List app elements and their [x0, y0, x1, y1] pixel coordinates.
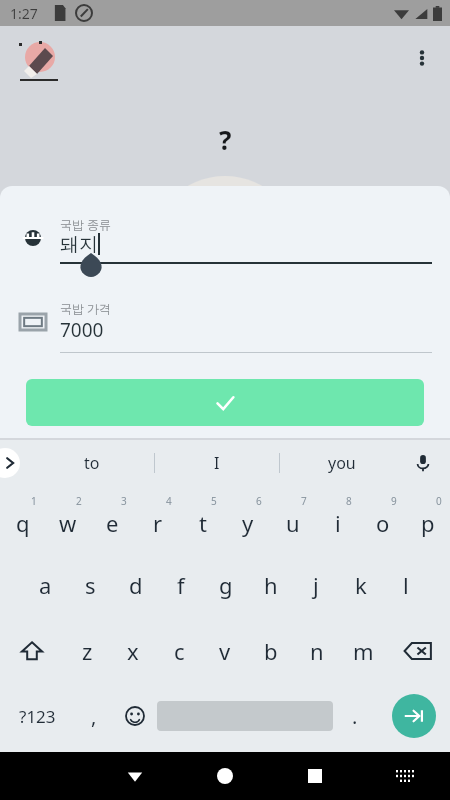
- staticText: u: [286, 508, 300, 538]
- staticText: 9: [391, 494, 397, 508]
- button[interactable]: Next: [392, 694, 436, 738]
- button[interactable]: ?123: [0, 684, 74, 748]
- button[interactable]: h: [248, 552, 293, 618]
- staticText: m: [353, 636, 374, 666]
- button[interactable]: d: [113, 552, 158, 618]
- button[interactable]: Expand toolbar: [0, 448, 20, 478]
- staticText: 국밥 가격: [60, 300, 112, 316]
- staticText: s: [85, 570, 96, 600]
- staticText: I: [214, 452, 220, 474]
- button[interactable]: t: [180, 486, 225, 552]
- button[interactable]: Keyboard indicator: [360, 752, 450, 800]
- staticText: a: [39, 570, 52, 600]
- button[interactable]: x: [110, 618, 156, 684]
- button[interactable]: v: [202, 618, 248, 684]
- staticText: 8: [346, 494, 352, 508]
- staticText: q: [16, 508, 30, 538]
- staticText: p: [421, 508, 435, 538]
- staticText: n: [310, 636, 324, 666]
- staticText: g: [219, 570, 233, 600]
- button[interactable]: Shift: [0, 618, 64, 684]
- staticText: r: [153, 508, 163, 538]
- button[interactable]: m: [340, 618, 386, 684]
- button[interactable]: More options: [402, 38, 442, 78]
- button[interactable]: o: [360, 486, 405, 552]
- button[interactable]: w: [45, 486, 90, 552]
- button[interactable]: p: [405, 486, 450, 552]
- staticText: e: [106, 508, 119, 538]
- staticText: d: [129, 570, 143, 600]
- staticText: t: [199, 508, 207, 538]
- staticText: f: [177, 570, 185, 600]
- button[interactable]: f: [158, 552, 203, 618]
- button[interactable]: i: [315, 486, 360, 552]
- button[interactable]: z: [64, 618, 110, 684]
- button[interactable]: a: [22, 552, 68, 618]
- button[interactable]: Recents: [270, 752, 360, 800]
- staticText: v: [219, 636, 231, 666]
- button[interactable]: k: [338, 552, 383, 618]
- staticText: l: [403, 570, 409, 600]
- button[interactable]: b: [248, 618, 294, 684]
- button[interactable]: you: [280, 440, 404, 486]
- button[interactable]: r: [135, 486, 180, 552]
- button[interactable]: I: [155, 440, 279, 486]
- button[interactable]: Back: [90, 752, 180, 800]
- staticText: 3: [121, 494, 127, 508]
- staticText: 7000: [60, 317, 104, 343]
- staticText: b: [264, 636, 278, 666]
- staticText: ,: [91, 703, 97, 730]
- staticText: ?123: [19, 705, 56, 728]
- button[interactable]: l: [383, 552, 428, 618]
- staticText: c: [174, 636, 185, 666]
- staticText: 국밥 종류: [60, 216, 112, 232]
- button[interactable]: Backspace: [386, 618, 450, 684]
- staticText: to: [84, 452, 100, 474]
- staticText: you: [328, 452, 356, 474]
- button[interactable]: j: [293, 552, 338, 618]
- staticText: 0: [436, 494, 442, 508]
- staticText: 1: [31, 494, 37, 508]
- staticText: h: [264, 570, 278, 600]
- staticText: o: [376, 508, 390, 538]
- button[interactable]: Home: [180, 752, 270, 800]
- staticText: ?: [219, 122, 232, 157]
- staticText: 7: [301, 494, 307, 508]
- staticText: j: [313, 570, 319, 600]
- button[interactable]: Voice input: [408, 448, 438, 478]
- button[interactable]: u: [270, 486, 315, 552]
- button[interactable]: e: [90, 486, 135, 552]
- staticText: 돼지: [60, 233, 98, 257]
- staticText: i: [335, 508, 341, 538]
- staticText: x: [127, 636, 139, 666]
- button[interactable]: ,: [74, 684, 113, 748]
- button[interactable]: Confirm: [26, 379, 424, 426]
- button[interactable]: y: [225, 486, 270, 552]
- staticText: y: [242, 508, 254, 538]
- button[interactable]: q: [0, 486, 45, 552]
- staticText: 1:27: [10, 4, 38, 23]
- button[interactable]: Emoji: [113, 684, 157, 748]
- staticText: 6: [256, 494, 262, 508]
- staticText: k: [355, 570, 367, 600]
- button[interactable]: g: [203, 552, 248, 618]
- staticText: 2: [76, 494, 82, 508]
- button[interactable]: s: [68, 552, 113, 618]
- staticText: 5: [211, 494, 217, 508]
- button[interactable]: App icon: [14, 34, 64, 84]
- button[interactable]: to: [30, 440, 154, 486]
- button[interactable]: n: [294, 618, 340, 684]
- staticText: 4: [166, 494, 172, 508]
- staticText: .: [352, 703, 358, 730]
- button[interactable]: c: [156, 618, 202, 684]
- staticText: w: [59, 508, 77, 538]
- button[interactable]: .: [333, 684, 377, 748]
- staticText: z: [82, 636, 93, 666]
